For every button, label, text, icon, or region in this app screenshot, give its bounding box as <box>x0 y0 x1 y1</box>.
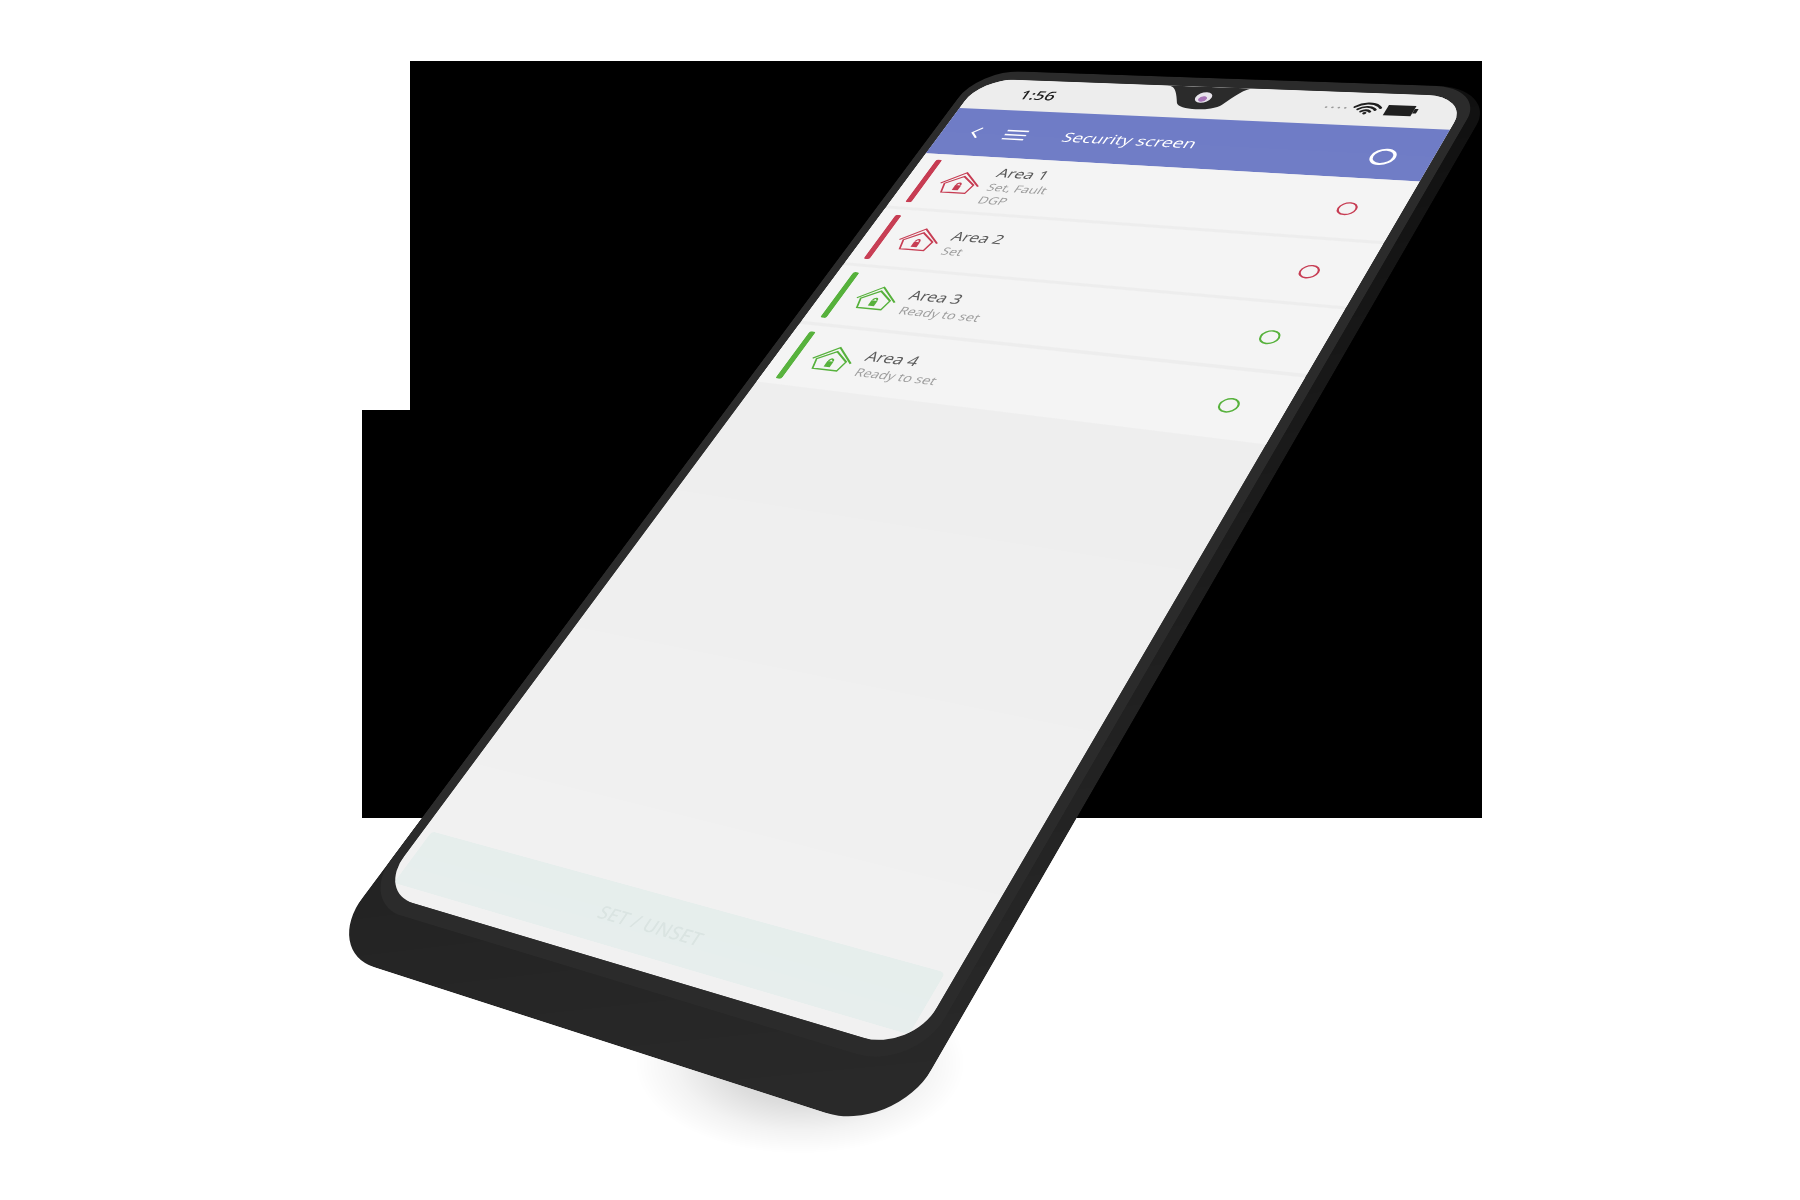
button[interactable]: Toggle Area 4 <box>1188 381 1269 428</box>
button[interactable]: Toggle Area 2 <box>1270 250 1348 292</box>
staticText: Area 2 <box>947 227 1010 248</box>
staticText: Area 1 <box>993 164 1054 184</box>
staticText: Set, Fault <box>984 180 1052 197</box>
staticText: Ready to set <box>851 364 942 388</box>
button[interactable]: Area 1 <box>887 153 1420 241</box>
button[interactable]: Toggle Area 1 <box>1309 189 1385 228</box>
button[interactable]: Toggle Area 3 <box>1230 315 1309 359</box>
button[interactable]: Area 2 <box>845 208 1383 306</box>
staticText: Ready to set <box>895 303 985 325</box>
button[interactable]: Area 3 <box>801 265 1345 374</box>
staticText: Area 4 <box>861 346 925 370</box>
button[interactable]: Set or unset all areas <box>1355 143 1410 170</box>
button[interactable]: Back <box>951 121 1000 145</box>
button[interactable]: Area 4 <box>756 324 1305 444</box>
staticText: DGP <box>974 193 1012 208</box>
staticText: Area 3 <box>905 286 968 308</box>
staticText: Security screen <box>1058 128 1203 152</box>
staticText: 1:56 <box>1015 86 1062 104</box>
staticText: Set <box>938 244 968 259</box>
button[interactable]: SET / UNSET <box>394 831 945 1035</box>
staticText: SET / UNSET <box>593 899 711 951</box>
button[interactable]: Menu <box>991 122 1040 147</box>
